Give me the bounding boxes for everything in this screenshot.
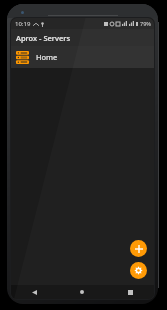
button[interactable]: Back <box>11 285 58 299</box>
button[interactable]: Add server <box>130 240 147 257</box>
staticText: 10:19 <box>15 20 31 28</box>
button[interactable]: Home <box>58 285 106 299</box>
button[interactable]: Recent apps <box>106 285 154 299</box>
staticText: Home <box>36 52 58 62</box>
staticText: Aprox - Servers <box>16 33 71 43</box>
staticText: 79% <box>140 20 151 27</box>
button[interactable]: Home <box>11 46 154 68</box>
button[interactable]: Settings <box>130 262 147 279</box>
